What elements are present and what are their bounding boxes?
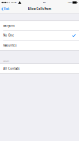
button[interactable]: Back xyxy=(0,5,11,13)
button[interactable]: Favourites xyxy=(0,41,79,50)
staticText: Everyone xyxy=(3,24,15,27)
staticText: 100% xyxy=(68,2,72,3)
button[interactable]: Everyone xyxy=(0,21,79,30)
staticText: Allow Calls From xyxy=(27,7,51,11)
button[interactable]: All Contacts xyxy=(0,64,79,73)
staticText: No One xyxy=(3,34,14,37)
staticText: Back xyxy=(4,7,9,11)
staticText: Carrier xyxy=(11,2,17,3)
staticText: 9:41 xyxy=(43,2,46,3)
staticText: Favourites xyxy=(3,44,16,47)
button[interactable]: No One xyxy=(0,31,79,40)
staticText: All Contacts xyxy=(3,67,19,70)
staticText: GROUPS xyxy=(3,60,9,62)
